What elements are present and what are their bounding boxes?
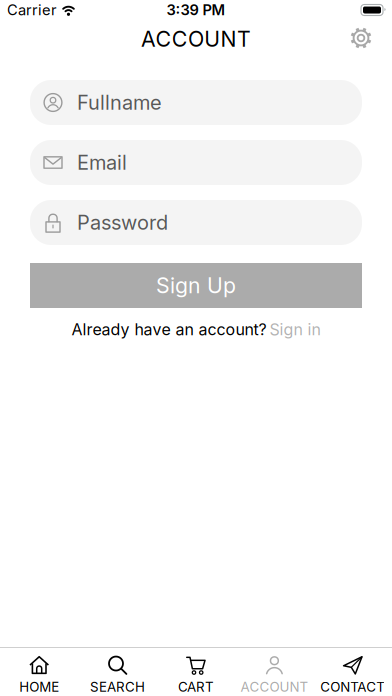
staticText: ACCOUNT [141,26,251,52]
staticText: HOME [19,679,59,695]
button[interactable]: ACCOUNT [235,648,314,696]
button[interactable]: Email [30,140,362,185]
staticText: Sign Up [156,273,236,298]
staticText: Password [77,211,168,234]
button[interactable]: HOME [0,648,78,696]
button[interactable]: SEARCH [78,648,157,696]
staticText: Fullname [77,91,162,114]
staticText: SEARCH [90,679,145,695]
button[interactable]: Sign Up [30,263,362,308]
staticText: Sign in [269,320,320,339]
staticText: ACCOUNT [240,679,308,695]
staticText: Email [77,151,127,174]
button[interactable]: Fullname [30,80,362,125]
button[interactable]: CART [157,648,235,696]
button[interactable]: Sign in [269,320,320,339]
staticText: 3:39 PM [166,1,225,19]
button[interactable]: Settings [349,26,392,52]
staticText: Already have an account? [71,320,266,339]
button[interactable]: Password [30,200,362,245]
staticText: CONTACT [320,679,385,695]
button[interactable]: CONTACT [314,648,392,696]
staticText: CART [178,679,214,695]
staticText: Carrier [7,1,57,19]
